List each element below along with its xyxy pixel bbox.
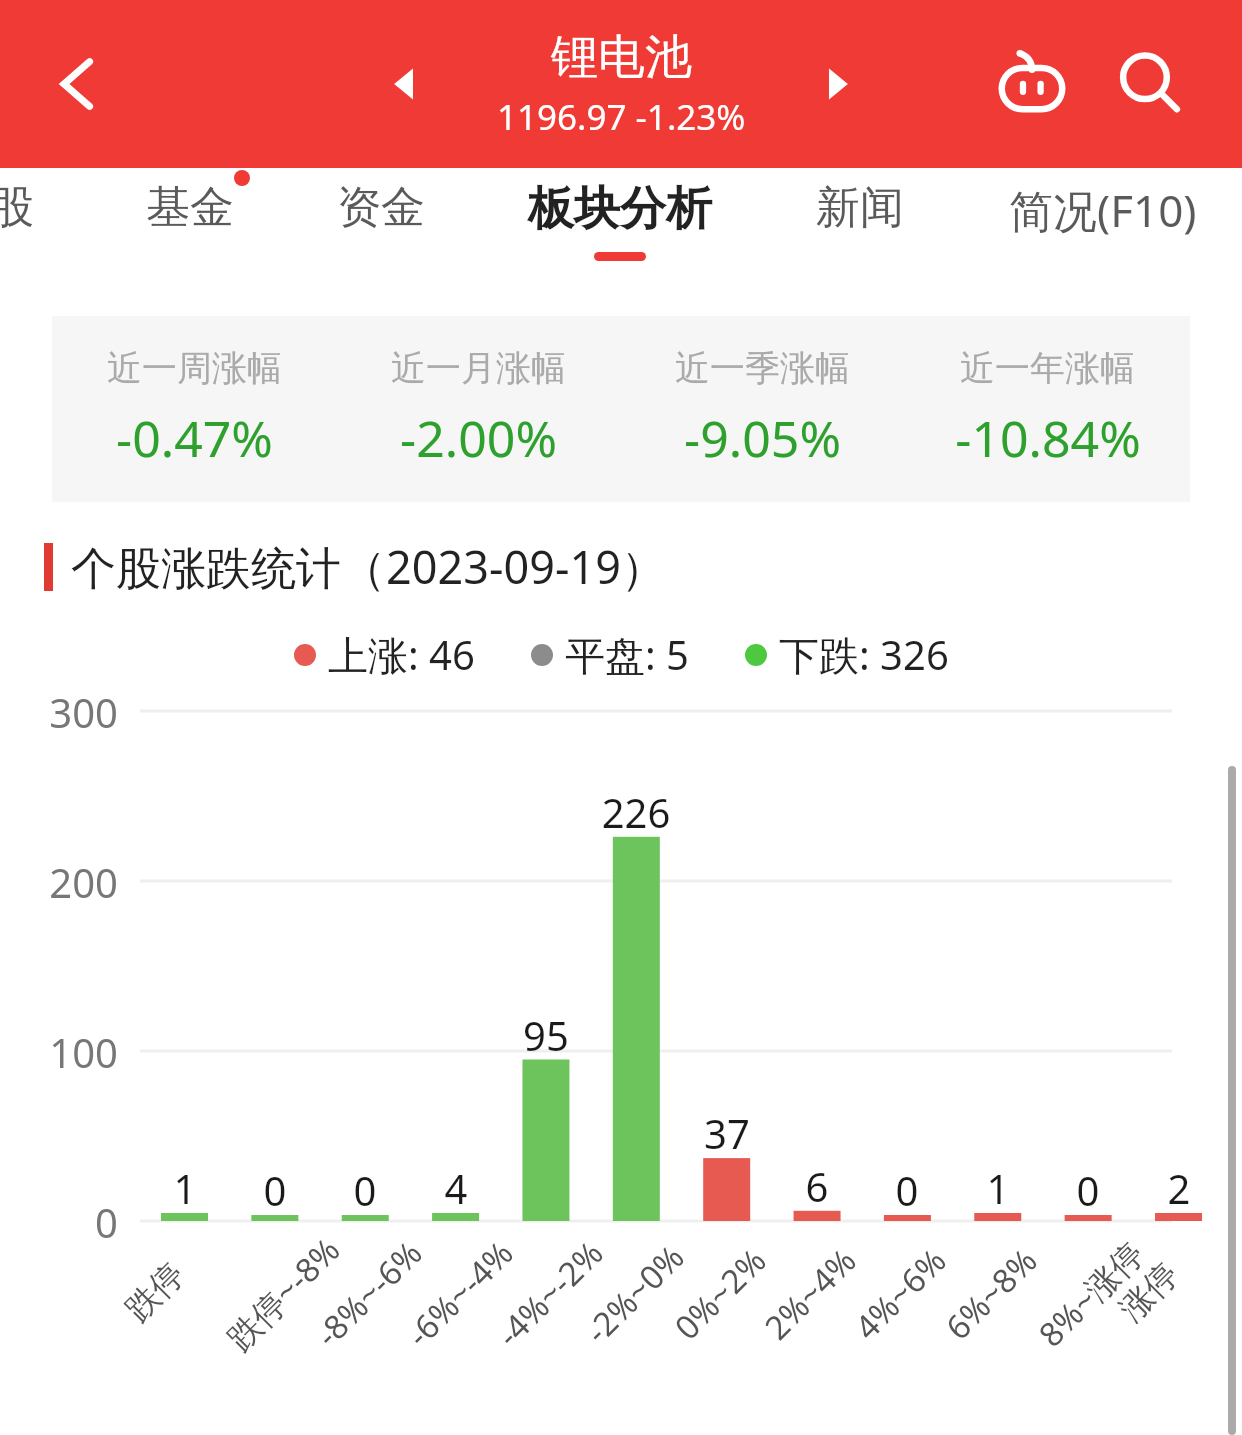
- button[interactable]: 上涨: 46: [294, 627, 475, 682]
- button[interactable]: 板块分析: [528, 180, 712, 261]
- staticText: 板块分析: [528, 180, 712, 238]
- button[interactable]: 下跌: 326: [745, 627, 949, 682]
- staticText: 6%~8%: [935, 1238, 1046, 1349]
- button[interactable]: 个股涨跌统计（2023-09-19）: [44, 536, 1242, 597]
- staticText: 简况(F10): [1009, 180, 1197, 240]
- staticText: -2%~0%: [575, 1234, 694, 1353]
- staticText: 0: [305, 1163, 425, 1217]
- staticText: 8%~涨停: [1028, 1231, 1154, 1356]
- staticText: 0: [1028, 1163, 1148, 1217]
- staticText: 2: [1119, 1161, 1239, 1215]
- staticText: 200: [0, 855, 118, 909]
- staticText: 1: [938, 1161, 1058, 1215]
- button[interactable]: 近一月涨幅: [336, 316, 620, 502]
- staticText: -8%~-6%: [306, 1231, 431, 1356]
- staticText: 近一年涨幅: [960, 346, 1135, 390]
- staticText: -9.05%: [684, 404, 841, 472]
- staticText: -0.47%: [116, 404, 273, 472]
- staticText: 近一月涨幅: [391, 346, 566, 390]
- button[interactable]: 近一周涨幅: [52, 316, 336, 502]
- staticText: 2%~4%: [754, 1238, 865, 1349]
- staticText: 37: [667, 1106, 787, 1160]
- staticText: -10.84%: [955, 404, 1141, 472]
- staticText: 0: [215, 1163, 335, 1217]
- staticText: 4: [396, 1161, 516, 1215]
- staticText: 锂电池: [551, 28, 692, 87]
- staticText: 下跌: 326: [779, 627, 949, 682]
- button[interactable]: 近一年涨幅: [905, 316, 1190, 502]
- button[interactable]: 近一季涨幅: [620, 316, 905, 502]
- staticText: 0: [0, 1195, 118, 1249]
- staticText: 平盘: 5: [565, 627, 689, 682]
- staticText: -4%~-2%: [487, 1231, 612, 1356]
- staticText: 股: [0, 180, 34, 235]
- staticText: 近一周涨幅: [107, 346, 282, 390]
- staticText: 300: [0, 685, 118, 739]
- staticText: 0%~2%: [664, 1238, 775, 1349]
- staticText: 1196.97 -1.23%: [497, 93, 746, 141]
- button[interactable]: Back: [40, 44, 120, 124]
- button[interactable]: Search: [1108, 42, 1192, 126]
- staticText: -6%~-4%: [397, 1231, 522, 1356]
- staticText: 跌停: [117, 1254, 193, 1330]
- staticText: 95: [486, 1008, 606, 1062]
- button[interactable]: 简况(F10): [1009, 180, 1197, 240]
- staticText: 新闻: [816, 180, 904, 235]
- button[interactable]: 平盘: 5: [531, 627, 689, 682]
- staticText: 跌停~-8%: [217, 1227, 349, 1360]
- button[interactable]: Previous sector: [371, 49, 441, 119]
- staticText: 226: [576, 785, 696, 839]
- staticText: 100: [0, 1025, 118, 1079]
- button[interactable]: 新闻: [816, 180, 904, 235]
- staticText: -2.00%: [400, 404, 557, 472]
- button[interactable]: AI assistant: [990, 42, 1074, 126]
- staticText: 基金: [146, 180, 234, 235]
- staticText: 近一季涨幅: [675, 346, 850, 390]
- staticText: 上涨: 46: [328, 627, 475, 682]
- staticText: 涨停: [1111, 1254, 1187, 1330]
- staticText: 资金: [337, 180, 425, 235]
- staticText: 1: [125, 1161, 245, 1215]
- staticText: 4%~6%: [844, 1238, 955, 1349]
- button[interactable]: Next sector: [801, 49, 871, 119]
- button[interactable]: 基金: [146, 180, 234, 235]
- staticText: 个股涨跌统计（2023-09-19）: [71, 536, 666, 597]
- button[interactable]: 资金: [337, 180, 425, 235]
- button[interactable]: 股: [0, 180, 34, 235]
- staticText: 6: [757, 1159, 877, 1213]
- staticText: 0: [847, 1163, 967, 1217]
